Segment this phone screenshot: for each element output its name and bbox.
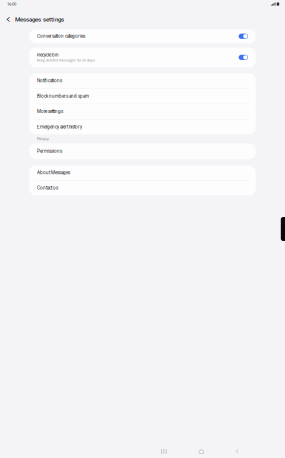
staticText: Recycle bin [37, 52, 59, 58]
staticText: Keep deleted messages for 30 days. [37, 58, 96, 62]
staticText: Conversation categories [37, 34, 85, 39]
button[interactable]: Emergency alert history [29, 119, 256, 134]
staticText: More settings [37, 109, 63, 114]
button[interactable]: Block numbers and spam [29, 89, 256, 104]
button[interactable]: Back [0, 14, 15, 24]
button[interactable]: Permissions [29, 143, 256, 159]
staticText: Block numbers and spam [37, 93, 89, 99]
button[interactable]: Notifications [29, 73, 256, 88]
staticText: About Messages [37, 170, 70, 175]
button[interactable]: Contact us [29, 181, 256, 195]
button[interactable]: More settings [29, 104, 256, 119]
staticText: 16:00 [7, 2, 16, 6]
button[interactable]: Home [183, 446, 220, 457]
button[interactable]: About Messages [29, 165, 256, 180]
staticText: Emergency alert history [37, 124, 82, 130]
button[interactable]: Conversation categories [29, 29, 256, 43]
staticText: Permissions [37, 149, 62, 154]
staticText: Messages settings [15, 16, 64, 23]
staticText: Notifications [37, 78, 62, 83]
button[interactable]: Recents [145, 446, 183, 457]
staticText: Privacy [37, 137, 49, 141]
button[interactable]: Back [220, 446, 255, 457]
staticText: Contact us [37, 185, 58, 191]
button[interactable]: Recycle bin [29, 47, 256, 67]
